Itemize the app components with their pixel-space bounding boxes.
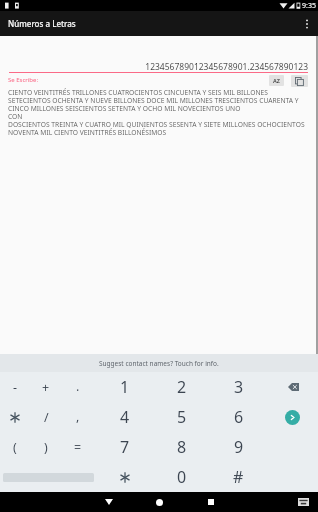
button[interactable]: 4 xyxy=(96,402,153,432)
staticText: + xyxy=(42,379,50,396)
staticText: AZ xyxy=(273,77,280,84)
button[interactable]: ) xyxy=(30,432,62,462)
button[interactable]: 8 xyxy=(153,432,210,462)
button[interactable]: ( xyxy=(0,432,30,462)
button[interactable]: Enter xyxy=(285,410,300,425)
staticText: = xyxy=(74,439,82,456)
staticText: SETECIENTOS OCHENTA Y NUEVE BILLONES DOC… xyxy=(8,96,299,104)
button[interactable]: Recents xyxy=(185,492,236,512)
staticText: # xyxy=(233,466,244,488)
button[interactable]: . xyxy=(62,372,94,402)
button[interactable]: Copy xyxy=(291,75,308,87)
staticText: 123456789012345678901.234567890123 xyxy=(0,61,308,73)
staticText: / xyxy=(44,409,49,426)
button[interactable]: # xyxy=(210,462,267,492)
button[interactable]: 3 xyxy=(210,372,267,402)
button[interactable]: / xyxy=(30,402,62,432)
staticText: Se Escribe: xyxy=(8,76,39,84)
button[interactable]: Backspace xyxy=(280,374,306,400)
button[interactable]: 5 xyxy=(153,402,210,432)
button[interactable]: AZ xyxy=(269,75,284,86)
staticText: CON xyxy=(8,112,23,120)
staticText: ) xyxy=(44,439,48,456)
staticText: , xyxy=(76,408,80,425)
staticText: 3 xyxy=(234,376,244,398)
button[interactable]: , xyxy=(62,402,94,432)
staticText: 7 xyxy=(120,436,130,458)
button[interactable]: 1 xyxy=(96,372,153,402)
staticText: 0 xyxy=(177,466,187,488)
staticText: DOSCIENTOS TREINTA Y CUATRO MIL QUINIENT… xyxy=(8,120,305,128)
staticText: 8 xyxy=(177,436,187,458)
staticText: Números a Letras xyxy=(8,18,76,29)
button[interactable]: 9 xyxy=(210,432,267,462)
staticText: ( xyxy=(13,439,17,456)
staticText: 2 xyxy=(177,376,187,398)
button[interactable] xyxy=(96,462,153,492)
staticText: - xyxy=(13,379,18,396)
staticText: CINCO MILLONES SEISCIENTOS SETENTA Y OCH… xyxy=(8,104,241,112)
staticText: 9:35 xyxy=(302,1,316,11)
button[interactable]: 6 xyxy=(210,402,267,432)
staticText: 6 xyxy=(234,406,244,428)
staticText: 9 xyxy=(234,436,244,458)
staticText: 1 xyxy=(120,376,130,398)
staticText: . xyxy=(76,378,80,395)
button[interactable]: = xyxy=(62,432,94,462)
staticText: 4 xyxy=(120,406,130,428)
staticText: 5 xyxy=(177,406,187,428)
button[interactable]: - xyxy=(0,372,30,402)
staticText: CIENTO VEINTITRÉS TRILLONES CUATROCIENTO… xyxy=(8,88,268,96)
button[interactable]: 0 xyxy=(153,462,210,492)
staticText: NOVENTA MIL CIENTO VEINTITRÉS BILLONÉSIM… xyxy=(8,128,167,136)
staticText: Suggest contact names? Touch for info. xyxy=(99,359,219,368)
button[interactable]: Back xyxy=(83,492,134,512)
button[interactable]: 7 xyxy=(96,432,153,462)
button[interactable] xyxy=(0,402,30,432)
button[interactable]: Home xyxy=(134,492,185,512)
button[interactable]: + xyxy=(30,372,62,402)
button[interactable]: Switch keyboard xyxy=(296,495,310,509)
button[interactable]: Suggest contact names? Touch for info. xyxy=(0,354,318,372)
button[interactable]: More options xyxy=(296,11,318,36)
button[interactable]: 2 xyxy=(153,372,210,402)
